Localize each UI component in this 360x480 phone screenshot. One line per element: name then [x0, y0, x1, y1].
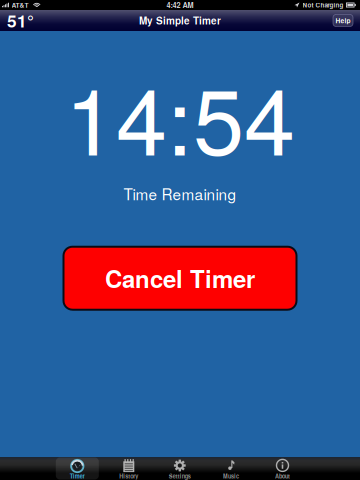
staticText: My Simple Timer — [139, 13, 221, 28]
staticText: 4:42 AM — [166, 0, 193, 10]
staticText: Time Remaining — [123, 183, 236, 205]
button[interactable]: History — [0, 457, 360, 480]
button[interactable]: Cancel Timer — [63, 247, 296, 310]
staticText: Music — [223, 472, 239, 480]
button[interactable]: Settings — [0, 457, 360, 480]
staticText: 51° — [7, 8, 34, 33]
button[interactable]: About — [0, 457, 360, 480]
staticText: Settings — [169, 472, 191, 480]
button[interactable]: Music — [0, 457, 360, 480]
button[interactable]: Timer — [0, 457, 360, 480]
staticText: History — [119, 472, 138, 480]
staticText: AT&T — [11, 0, 28, 10]
staticText: Timer — [70, 472, 85, 480]
staticText: Cancel Timer — [105, 261, 255, 295]
staticText: Help — [335, 16, 350, 25]
button[interactable]: Help — [333, 14, 353, 26]
staticText: Not Charging — [302, 0, 343, 9]
staticText: 14:54 — [65, 50, 295, 182]
staticText: About — [275, 472, 290, 480]
